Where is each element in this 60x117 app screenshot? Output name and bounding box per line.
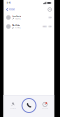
- staticText: Incoming: [14, 27, 20, 28]
- button[interactable]: Recents: [38, 101, 52, 110]
- staticText: Mark Dolan: [12, 24, 20, 26]
- staticText: Outgoing: [14, 18, 20, 19]
- staticText: 9:41: [7, 2, 11, 4]
- staticText: Jane Austin: [12, 15, 21, 17]
- button[interactable]: Call: [21, 98, 36, 113]
- staticText: Contacts: [10, 107, 16, 109]
- staticText: Mon: [43, 26, 46, 27]
- button[interactable]: Recents: [45, 6, 54, 13]
- button[interactable]: Mark Dolan: [3, 22, 54, 31]
- staticText: Recents: [42, 107, 48, 109]
- staticText: Keypad: [9, 8, 15, 11]
- button[interactable]: Contacts: [6, 101, 20, 110]
- staticText: 2m: [49, 26, 51, 27]
- button[interactable]: Keypad: [3, 6, 17, 13]
- button[interactable]: Jane Austin: [3, 13, 54, 22]
